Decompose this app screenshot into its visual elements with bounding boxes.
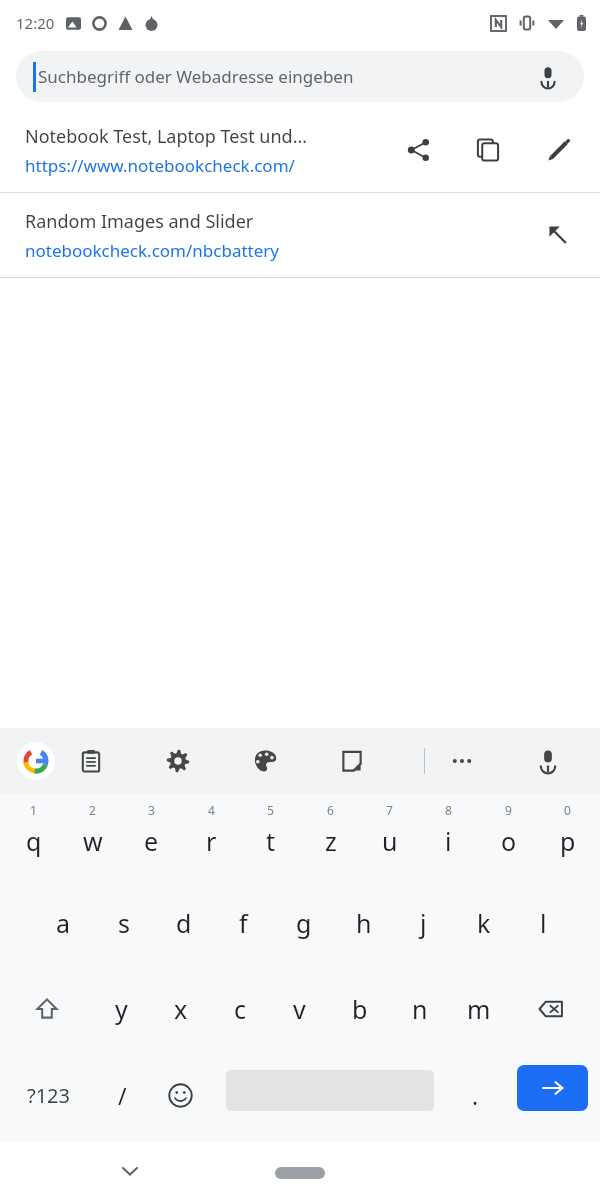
staticText: a (56, 906, 71, 940)
staticText: v (293, 992, 306, 1026)
button[interactable]: Shift (10, 966, 84, 1052)
button[interactable]: / (93, 1052, 151, 1138)
staticText: 6 (327, 802, 334, 818)
button[interactable]: y (92, 966, 151, 1052)
button[interactable]: Voice search (526, 55, 570, 99)
button[interactable]: Suchbegriff oder Webadresse eingeben (16, 51, 584, 102)
button[interactable]: f (214, 880, 273, 966)
staticText: z (325, 824, 337, 858)
staticText: j (420, 906, 427, 940)
button[interactable]: Insert suggestion (534, 211, 582, 259)
staticText: q (26, 824, 42, 858)
button[interactable]: Clipboard (67, 728, 115, 794)
staticText: 1 (30, 802, 37, 818)
staticText: l (540, 906, 547, 940)
staticText: r (206, 824, 217, 858)
staticText: x (174, 992, 188, 1026)
staticText: notebookcheck.com/nbcbattery (25, 239, 279, 262)
staticText: 8 (445, 802, 452, 818)
button[interactable]: Emoji (151, 1052, 209, 1138)
button[interactable]: Themes (241, 728, 289, 794)
button[interactable]: 2 (63, 794, 122, 880)
button[interactable]: 3 (122, 794, 181, 880)
button[interactable]: v (270, 966, 329, 1052)
button[interactable]: g (274, 880, 333, 966)
button[interactable]: 7 (360, 794, 419, 880)
button[interactable]: 1 (4, 794, 63, 880)
staticText: 7 (386, 802, 393, 818)
button[interactable]: 9 (479, 794, 538, 880)
button[interactable]: ?123 (7, 1052, 89, 1138)
button[interactable]: 8 (419, 794, 478, 880)
staticText: n (412, 992, 428, 1026)
button[interactable]: Edit (535, 126, 583, 174)
staticText: Random Images and Slider (25, 209, 254, 234)
button[interactable]: More options (438, 728, 486, 794)
button[interactable]: c (211, 966, 270, 1052)
staticText: d (176, 906, 192, 940)
button[interactable]: Voice input (524, 728, 572, 794)
staticText: b (352, 992, 368, 1026)
staticText: h (356, 906, 372, 940)
button[interactable]: 6 (301, 794, 360, 880)
button[interactable]: 0 (538, 794, 597, 880)
button[interactable]: h (334, 880, 393, 966)
button[interactable]: k (454, 880, 513, 966)
staticText: u (382, 824, 398, 858)
button[interactable]: l (514, 880, 573, 966)
staticText: c (234, 992, 247, 1026)
staticText: 4 (208, 802, 215, 818)
staticText: e (144, 824, 159, 858)
button[interactable]: 5 (241, 794, 300, 880)
button[interactable]: Random Images and Slider (0, 193, 600, 277)
button[interactable]: Handwriting (328, 728, 376, 794)
staticText: w (83, 824, 103, 858)
staticText: g (296, 906, 312, 940)
button[interactable]: n (390, 966, 449, 1052)
button[interactable]: d (154, 880, 213, 966)
staticText: o (501, 824, 517, 858)
staticText: 12:20 (16, 13, 55, 33)
button[interactable]: Share (395, 126, 443, 174)
button[interactable]: Back (106, 1147, 154, 1195)
button[interactable]: a (34, 880, 93, 966)
button[interactable]: Settings (154, 728, 202, 794)
staticText: https://www.notebookcheck.com/ (25, 154, 295, 177)
staticText: Suchbegriff oder Webadresse eingeben (38, 65, 354, 88)
staticText: t (266, 824, 276, 858)
staticText: f (239, 906, 248, 940)
staticText: p (560, 824, 576, 858)
button[interactable]: s (94, 880, 153, 966)
button[interactable]: . (446, 1052, 504, 1138)
staticText: 2 (89, 802, 96, 818)
staticText: . (472, 1080, 479, 1111)
button[interactable]: Google search (12, 728, 60, 794)
staticText: k (477, 906, 491, 940)
staticText: i (445, 824, 452, 858)
staticText: ?123 (27, 1082, 70, 1109)
button[interactable]: 4 (182, 794, 241, 880)
staticText: s (118, 906, 130, 940)
staticText: / (118, 1080, 127, 1111)
button[interactable]: j (394, 880, 453, 966)
staticText: 5 (267, 802, 274, 818)
staticText: 9 (505, 802, 512, 818)
button[interactable]: Notebook Test, Laptop Test und… (0, 108, 600, 192)
button[interactable]: Enter (517, 1065, 588, 1111)
button[interactable]: Home (275, 1167, 325, 1179)
button[interactable]: m (449, 966, 508, 1052)
staticText: 3 (148, 802, 155, 818)
staticText: Notebook Test, Laptop Test und… (25, 124, 307, 149)
staticText: y (115, 992, 128, 1026)
button[interactable]: x (151, 966, 210, 1052)
button[interactable]: b (330, 966, 389, 1052)
staticText: 0 (564, 802, 571, 818)
button[interactable]: Backspace (513, 966, 589, 1052)
button[interactable]: Copy (464, 126, 512, 174)
staticText: m (467, 992, 491, 1026)
